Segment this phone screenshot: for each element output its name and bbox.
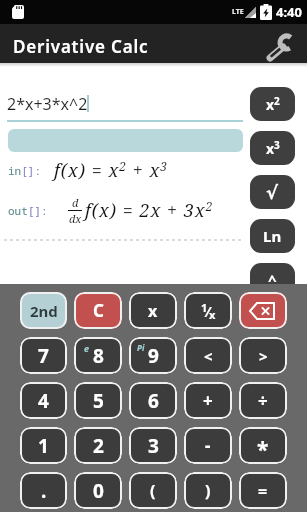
- staticText: *: [257, 435, 269, 464]
- staticText: (: [150, 480, 156, 502]
- staticText: x3: [266, 138, 280, 158]
- button[interactable]: 7: [20, 337, 67, 374]
- staticText: ^: [268, 270, 277, 284]
- staticText: f(x) = x2 + x3: [54, 158, 168, 183]
- button[interactable]: x2: [250, 87, 295, 121]
- button[interactable]: (: [129, 472, 177, 509]
- button[interactable]: *: [239, 427, 287, 464]
- staticText: 5: [93, 388, 104, 414]
- staticText: 2*x+3*x^2: [7, 93, 88, 115]
- staticText: -: [205, 434, 211, 457]
- button[interactable]: 2: [74, 427, 122, 464]
- staticText: 2nd: [30, 301, 58, 321]
- staticText: 8: [93, 343, 104, 369]
- button[interactable]: =: [239, 472, 287, 509]
- button[interactable]: [239, 292, 287, 329]
- staticText: 4:40: [276, 3, 302, 21]
- staticText: 4: [38, 388, 49, 414]
- button[interactable]: 5: [74, 382, 122, 419]
- staticText: 1: [38, 433, 49, 459]
- staticText: .: [41, 478, 47, 504]
- button[interactable]: ): [184, 472, 232, 509]
- staticText: Derivative Calc: [13, 35, 149, 58]
- button[interactable]: -: [184, 427, 232, 464]
- staticText: f(x) = 2x + 3x2: [85, 198, 214, 223]
- button[interactable]: 8: [74, 337, 122, 374]
- button[interactable]: ^: [250, 263, 295, 284]
- staticText: 2: [93, 433, 104, 459]
- staticText: =: [258, 480, 268, 502]
- staticText: dx: [69, 211, 82, 226]
- staticText: Pi: [137, 342, 145, 353]
- button[interactable]: 2nd: [20, 292, 67, 329]
- staticText: x2: [266, 94, 280, 114]
- button[interactable]: 4: [20, 382, 67, 419]
- button[interactable]: .: [20, 472, 67, 509]
- staticText: <: [204, 346, 213, 366]
- staticText: ): [205, 480, 211, 502]
- staticText: ÷: [258, 389, 268, 412]
- staticText: x: [148, 300, 158, 322]
- staticText: in[]:: [8, 163, 41, 178]
- button[interactable]: 3: [129, 427, 177, 464]
- staticText: +: [203, 389, 213, 412]
- staticText: 9: [148, 343, 159, 369]
- staticText: 3: [148, 433, 159, 459]
- staticText: LTE: [232, 7, 244, 17]
- button[interactable]: 9: [129, 337, 177, 374]
- button[interactable]: 6: [129, 382, 177, 419]
- button[interactable]: x3: [250, 131, 295, 165]
- button[interactable]: [8, 129, 243, 152]
- button[interactable]: Ln: [250, 219, 295, 253]
- staticText: 6: [148, 388, 159, 414]
- button[interactable]: <: [184, 337, 232, 374]
- staticText: >: [259, 346, 268, 366]
- staticText: Ln: [263, 226, 282, 246]
- staticText: √: [266, 182, 279, 203]
- staticText: 1⁄x: [201, 300, 216, 322]
- button[interactable]: 1⁄x: [184, 292, 232, 329]
- button[interactable]: 1: [20, 427, 67, 464]
- staticText: d: [72, 195, 79, 210]
- staticText: C: [93, 299, 104, 322]
- button[interactable]: +: [184, 382, 232, 419]
- button[interactable]: >: [239, 337, 287, 374]
- staticText: 7: [38, 343, 49, 369]
- button[interactable]: 0: [74, 472, 122, 509]
- button[interactable]: ÷: [239, 382, 287, 419]
- button[interactable]: C: [74, 292, 122, 329]
- staticText: 0: [93, 478, 104, 504]
- staticText: out[]:: [8, 203, 48, 218]
- button[interactable]: √: [250, 175, 295, 209]
- button[interactable]: x: [129, 292, 177, 329]
- staticText: e: [84, 342, 90, 354]
- button[interactable]: [265, 29, 295, 59]
